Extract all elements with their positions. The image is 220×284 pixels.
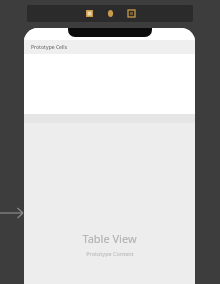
button[interactable]: Prototype Cells xyxy=(24,40,195,54)
staticText: Prototype Cells xyxy=(31,44,68,51)
staticText: Prototype Content xyxy=(86,250,134,257)
button[interactable]: Settings xyxy=(127,9,136,18)
staticText: Table View xyxy=(82,231,137,246)
button[interactable]: Device xyxy=(106,9,115,18)
button[interactable]: Flow connection xyxy=(0,203,26,223)
button[interactable]: Preview xyxy=(85,9,94,18)
